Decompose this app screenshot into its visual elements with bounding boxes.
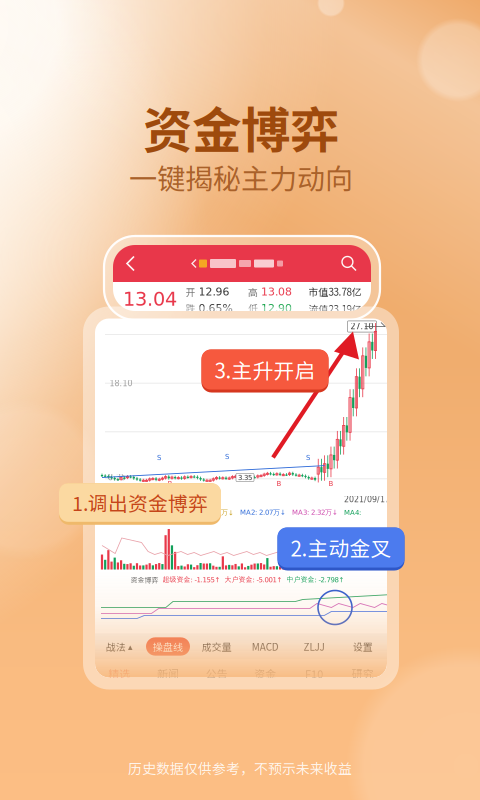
staticText: 2021/09/17 [344, 495, 390, 504]
staticText: 研究 [352, 666, 374, 681]
staticText: 精选 [108, 666, 130, 681]
staticText: MACD [252, 639, 279, 654]
button[interactable]: 精选 [95, 660, 144, 687]
staticText: 27.10 [350, 322, 373, 331]
staticText: 操盘线 [153, 639, 183, 654]
staticText: 3.35 [238, 473, 252, 481]
staticText: 成交量 [202, 639, 232, 654]
staticText: 1.77万↓ [207, 508, 234, 517]
button[interactable]: ZLJJ [290, 633, 338, 659]
staticText: 12.96 [198, 285, 229, 298]
button[interactable]: 3.主升开启 [201, 349, 328, 392]
staticText: ZLJJ [303, 639, 324, 654]
staticText: S [157, 453, 161, 461]
staticText: 资金博弈 [143, 91, 339, 163]
staticText: S [306, 453, 310, 461]
button[interactable]: 1.调出资金博弈 [59, 483, 221, 525]
button[interactable]: 研究 [338, 660, 387, 687]
staticText: MA3: 2.32万↓ [292, 508, 338, 517]
staticText: 开 [185, 285, 195, 299]
button[interactable]: Search [332, 249, 366, 277]
staticText: 公告 [206, 666, 228, 681]
staticText: 大户资金: -5.001↑ [224, 575, 282, 584]
staticText: 超级资金: -1.155↑ [162, 575, 220, 584]
staticText: 跌 [185, 301, 195, 315]
button[interactable]: 2.主动金叉 [277, 527, 404, 570]
staticText: 13.08 [261, 285, 292, 298]
staticText: 设置 [353, 639, 373, 654]
staticText: 流值23.19亿 [308, 301, 361, 316]
button[interactable]: 成交量 [192, 633, 241, 659]
staticText: 3.主升开启 [214, 354, 315, 384]
button[interactable]: 操盘线 [144, 633, 192, 659]
button[interactable]: Back [118, 249, 143, 277]
button[interactable]: 公告 [192, 660, 241, 687]
staticText: B [276, 479, 281, 487]
button[interactable]: 设置 [338, 633, 387, 659]
staticText: B [167, 479, 172, 487]
staticText: 高 [248, 285, 258, 299]
staticText: 市值33.78亿 [308, 284, 361, 298]
staticText: 资金博弈 [130, 574, 158, 584]
staticText: 低 [248, 301, 258, 315]
staticText: MA2: 2.07万↓ [240, 508, 286, 517]
staticText: 历史数据仅供参考，不预示未来收益 [128, 758, 352, 778]
staticText: 1.调出资金博弈 [72, 488, 208, 517]
staticText: 18.10 [109, 379, 132, 388]
staticText: 12.90 [261, 302, 292, 314]
staticText: 0.65% [198, 302, 232, 314]
staticText: 一键揭秘主力动向 [129, 157, 353, 197]
button[interactable]: 新闻 [144, 660, 192, 687]
staticText: 13.04 [123, 288, 177, 310]
button[interactable]: F10 [290, 660, 338, 687]
button[interactable]: 资金 [241, 660, 290, 687]
staticText: 2.主动金叉 [290, 532, 391, 562]
button[interactable]: 战法 ▴ [95, 633, 144, 659]
staticText: 资金 [254, 666, 276, 681]
staticText: 新闻 [157, 666, 179, 681]
staticText: MA4: [344, 508, 361, 516]
staticText: S [225, 452, 229, 460]
staticText: 战法 ▴ [106, 639, 133, 654]
staticText: 中户资金: -2.798↑ [286, 575, 344, 584]
staticText: F10 [305, 666, 323, 681]
staticText: 8.35 [108, 473, 126, 482]
button[interactable]: MACD [241, 633, 290, 659]
staticText: B [328, 479, 333, 487]
